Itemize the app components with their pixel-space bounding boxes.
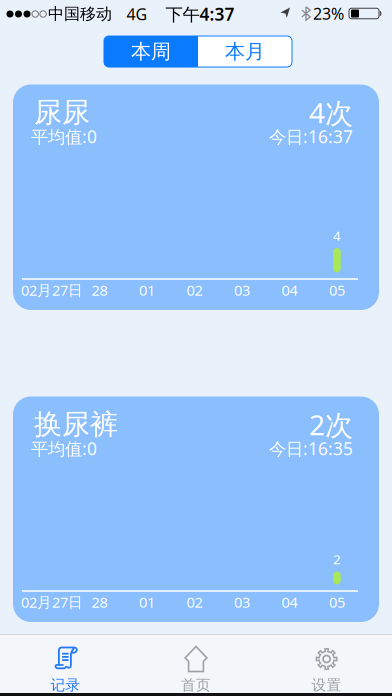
staticText: 今日:16:35 [269,437,353,460]
staticText: 28 [91,280,107,300]
staticText: 4次 [309,94,353,131]
staticText: 下午4:37 [165,2,234,25]
staticText: 03 [234,592,250,612]
staticText: 02月27日 [21,592,83,612]
staticText: 2 [333,550,341,568]
staticText: 05 [329,592,345,612]
staticText: 05 [329,280,345,300]
staticText: 记录 [50,676,80,694]
staticText: 今日:16:37 [269,125,353,148]
staticText: 设置 [312,676,342,694]
staticText: 01 [139,280,155,300]
staticText: 03 [234,280,250,300]
staticText: 平均值:0 [31,437,97,460]
staticText: 04 [281,280,297,300]
button[interactable]: 本周 [104,36,198,67]
staticText: 4G [126,3,147,25]
staticText: 中国移动 [48,4,112,24]
staticText: 04 [281,592,297,612]
staticText: 尿尿 [34,95,90,130]
staticText: 23% [313,3,344,24]
staticText: 02月27日 [21,280,83,300]
staticText: 4 [333,227,341,244]
staticText: 首页 [181,676,211,694]
staticText: 02 [186,592,202,612]
staticText: 本月 [225,39,265,64]
button[interactable]: 记录 [0,634,131,693]
button[interactable]: 本月 [198,36,292,67]
button[interactable]: 设置 [261,634,392,693]
staticText: 平均值:0 [31,125,97,148]
staticText: 换尿裤 [34,407,118,442]
staticText: 01 [139,592,155,612]
staticText: 本周 [131,39,171,64]
staticText: 2次 [309,406,353,443]
staticText: 28 [91,592,107,612]
button[interactable]: 首页 [131,634,261,693]
staticText: 02 [186,280,202,300]
